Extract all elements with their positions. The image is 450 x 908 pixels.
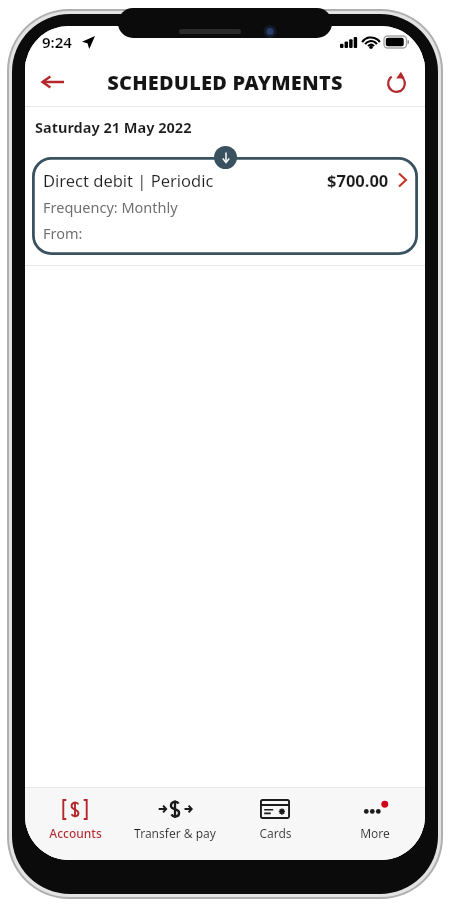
staticText: $700.00 — [327, 169, 389, 191]
button[interactable]: Refresh — [375, 61, 417, 103]
other: Payment out — [214, 146, 237, 169]
staticText: Frequency: Monthly — [43, 197, 178, 217]
button[interactable]: More — [325, 797, 425, 841]
staticText: Transfer & pay — [134, 825, 216, 841]
button[interactable]: Cards — [225, 797, 325, 841]
staticText: Accounts — [49, 825, 102, 841]
staticText: Saturday 21 May 2022 — [35, 117, 192, 137]
staticText: From: — [43, 223, 83, 243]
staticText: Direct debit | Periodic — [43, 169, 327, 191]
button[interactable]: Direct debit | Periodic — [32, 157, 418, 255]
staticText: 9:24 — [42, 32, 72, 52]
staticText: Cards — [259, 825, 292, 841]
staticText: SCHEDULED PAYMENTS — [107, 69, 343, 96]
button[interactable]: Transfer & pay — [125, 797, 225, 841]
button[interactable]: Accounts — [25, 797, 125, 841]
button[interactable]: Back — [31, 60, 75, 104]
staticText: More — [360, 825, 390, 841]
